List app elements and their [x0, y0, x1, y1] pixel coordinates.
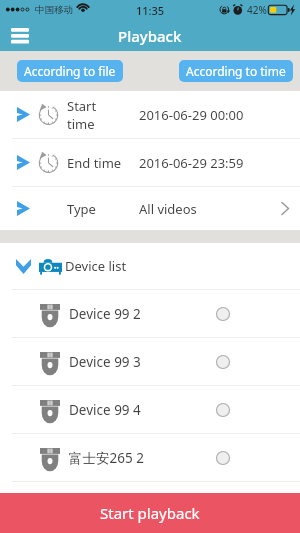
button[interactable]: Start time — [0, 91, 300, 138]
staticText: Playback — [118, 26, 182, 46]
button[interactable]: Menu — [0, 20, 40, 51]
staticText: Start time — [67, 97, 123, 133]
button[interactable]: End time — [0, 139, 300, 186]
staticText: Start playback — [100, 503, 200, 523]
staticText: Device 99 3 — [69, 353, 141, 371]
staticText: Device list — [65, 257, 127, 275]
staticText: 2016-06-29 00:00 — [139, 106, 244, 124]
button[interactable]: Device 99 2 — [0, 290, 300, 337]
button[interactable]: Device list — [0, 243, 300, 289]
other: Select Device 99 4 — [216, 403, 230, 417]
other: Select 富士安265 2 — [216, 451, 230, 465]
button[interactable]: Start playback — [0, 493, 300, 533]
staticText: 中国移动 — [35, 4, 73, 16]
staticText: All videos — [139, 200, 197, 218]
button[interactable]: According to time — [179, 60, 293, 82]
staticText: End time — [67, 154, 122, 172]
staticText: Type — [67, 200, 96, 218]
staticText: According to time — [186, 63, 286, 79]
staticText: 11:35 — [136, 3, 165, 18]
button[interactable]: Device 99 4 — [0, 386, 300, 433]
button[interactable]: Type — [0, 187, 300, 230]
other: Choose type — [281, 201, 290, 216]
staticText: According to file — [24, 63, 116, 79]
other: Select Device 99 2 — [216, 307, 230, 321]
staticText: 42% — [247, 3, 267, 17]
staticText: 富士安265 2 — [69, 449, 144, 467]
button[interactable]: 富士安265 2 — [0, 434, 300, 481]
staticText: Device 99 2 — [69, 305, 141, 323]
staticText: 2016-06-29 23:59 — [139, 154, 244, 172]
staticText: Device 99 4 — [69, 401, 141, 419]
button[interactable]: Device 99 3 — [0, 338, 300, 385]
button[interactable]: According to file — [17, 60, 123, 82]
other: Select Device 99 3 — [216, 355, 230, 369]
